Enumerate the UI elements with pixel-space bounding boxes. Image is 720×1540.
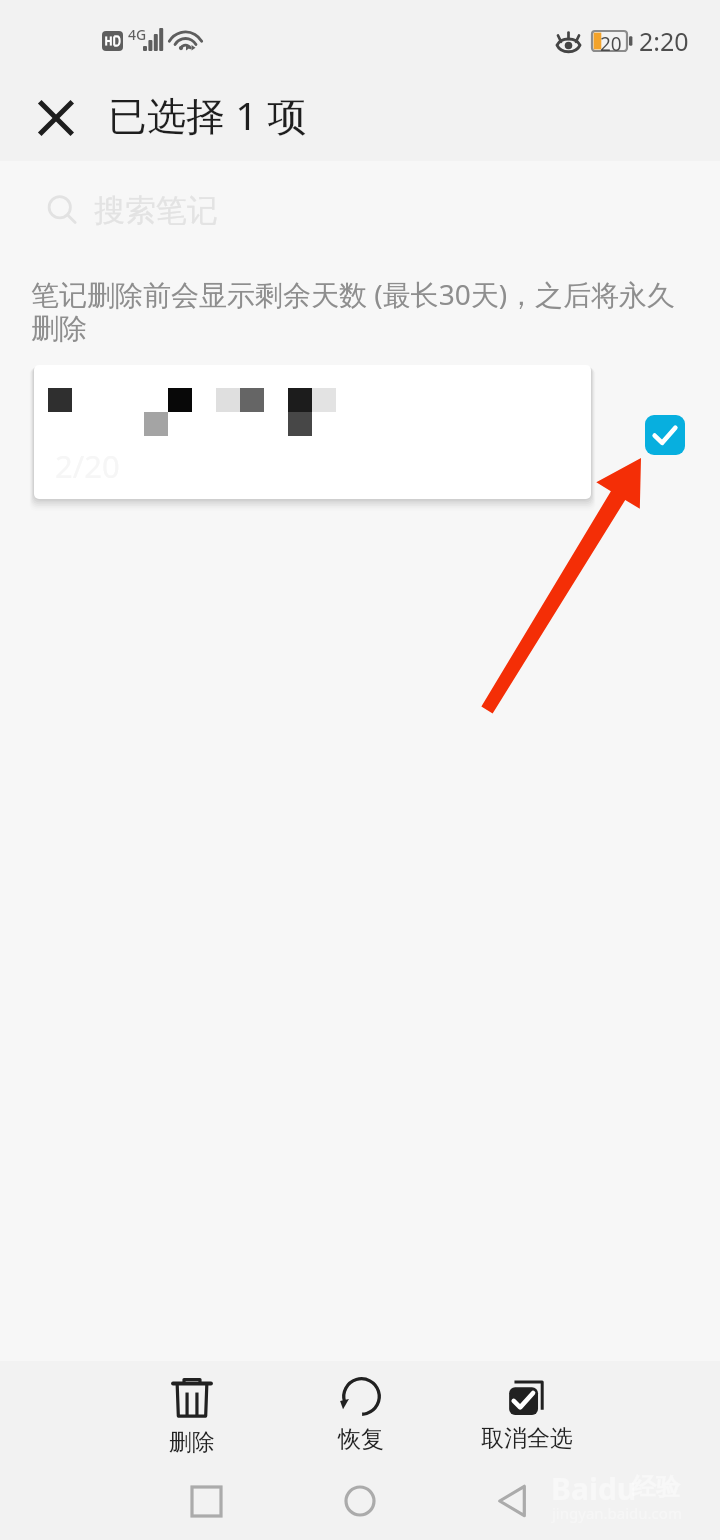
staticText: 20 — [600, 31, 622, 51]
staticText: 4G — [128, 25, 147, 44]
staticText: 笔记删除前会显示剩余天数 (最长30天)，之后将永久删除 — [31, 275, 683, 346]
button[interactable]: Back — [452, 1470, 572, 1532]
staticText: 2/20 — [55, 445, 120, 487]
button[interactable]: Selected — [645, 415, 685, 455]
button[interactable]: 搜索笔记 — [34, 180, 534, 240]
button[interactable]: 取消全选 — [457, 1368, 597, 1460]
staticText: 搜索笔记 — [94, 191, 218, 230]
button[interactable]: Recents — [146, 1470, 266, 1532]
button[interactable]: Home — [300, 1470, 420, 1532]
staticText: 删除 — [169, 1428, 215, 1457]
staticText: 取消全选 — [481, 1424, 573, 1453]
button[interactable]: 恢复 — [291, 1368, 431, 1460]
staticText: 已选择 1 项 — [108, 88, 307, 141]
button[interactable]: Close — [26, 88, 86, 148]
button[interactable]: 2/20 — [34, 365, 591, 499]
button[interactable]: 删除 — [122, 1368, 262, 1460]
staticText: 恢复 — [338, 1425, 384, 1454]
staticText: 2:20 — [639, 24, 689, 58]
